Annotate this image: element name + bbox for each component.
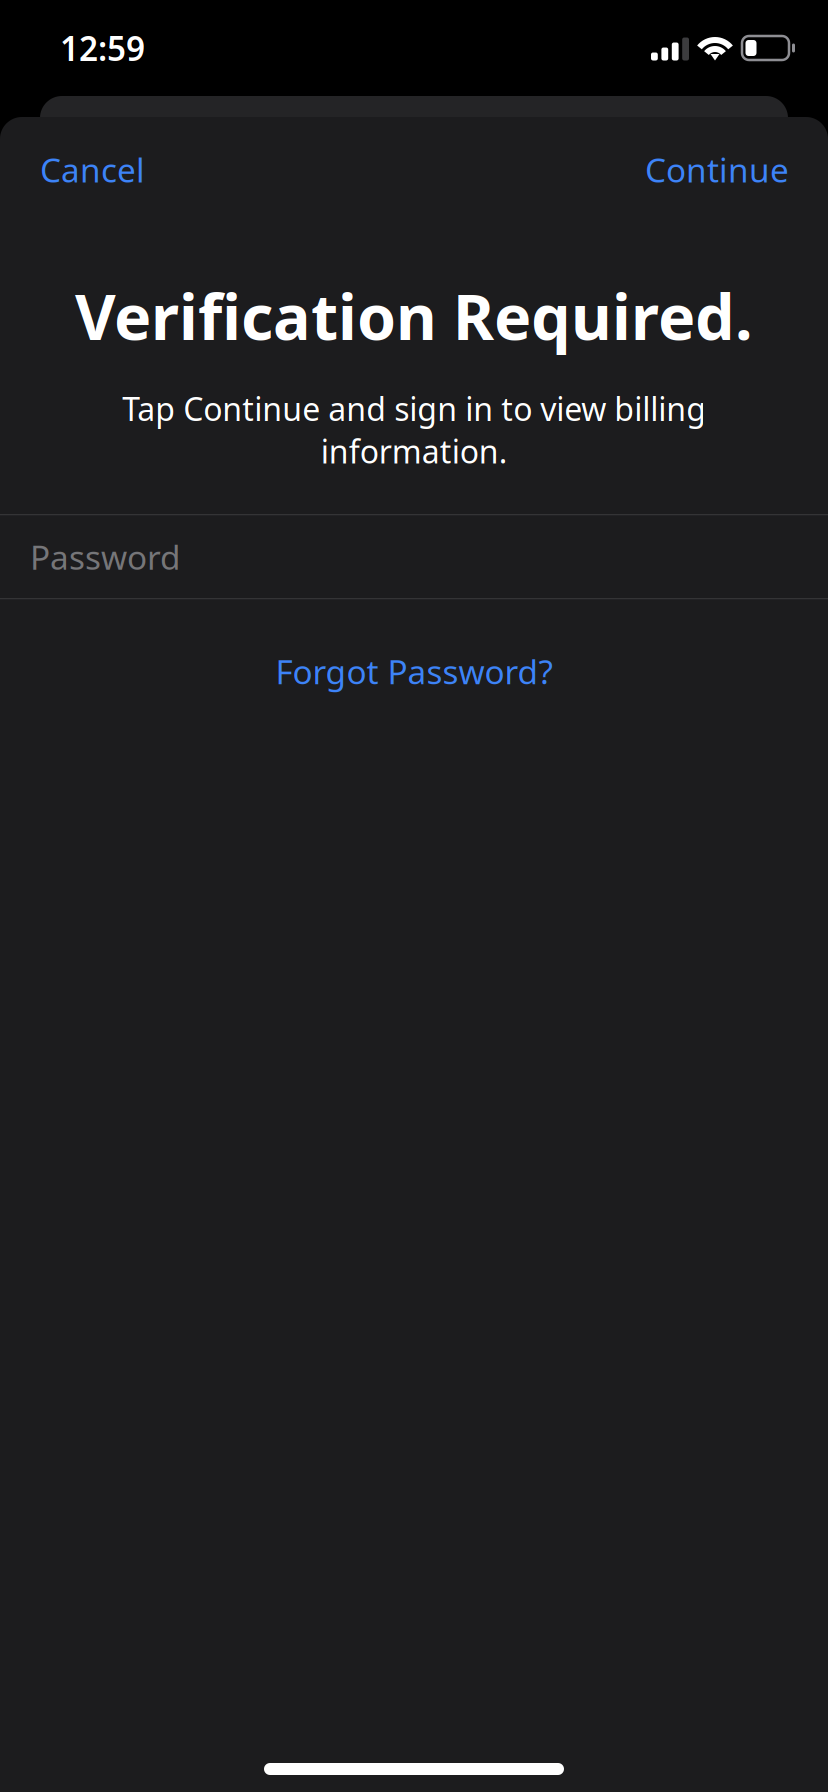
staticText: Cancel [40, 147, 145, 192]
button[interactable]: Continue [645, 117, 789, 222]
button[interactable]: Cancel [40, 117, 145, 222]
staticText: Continue [645, 147, 789, 192]
staticText: Verification Required. [75, 274, 753, 357]
staticText: Password [30, 535, 181, 579]
staticText: Tap Continue and sign in to view billing… [122, 387, 706, 472]
button[interactable]: Password [0, 515, 828, 598]
staticText: 12:59 [60, 26, 145, 70]
staticText: Forgot Password? [275, 649, 552, 693]
button[interactable]: Forgot Password? [0, 599, 828, 743]
